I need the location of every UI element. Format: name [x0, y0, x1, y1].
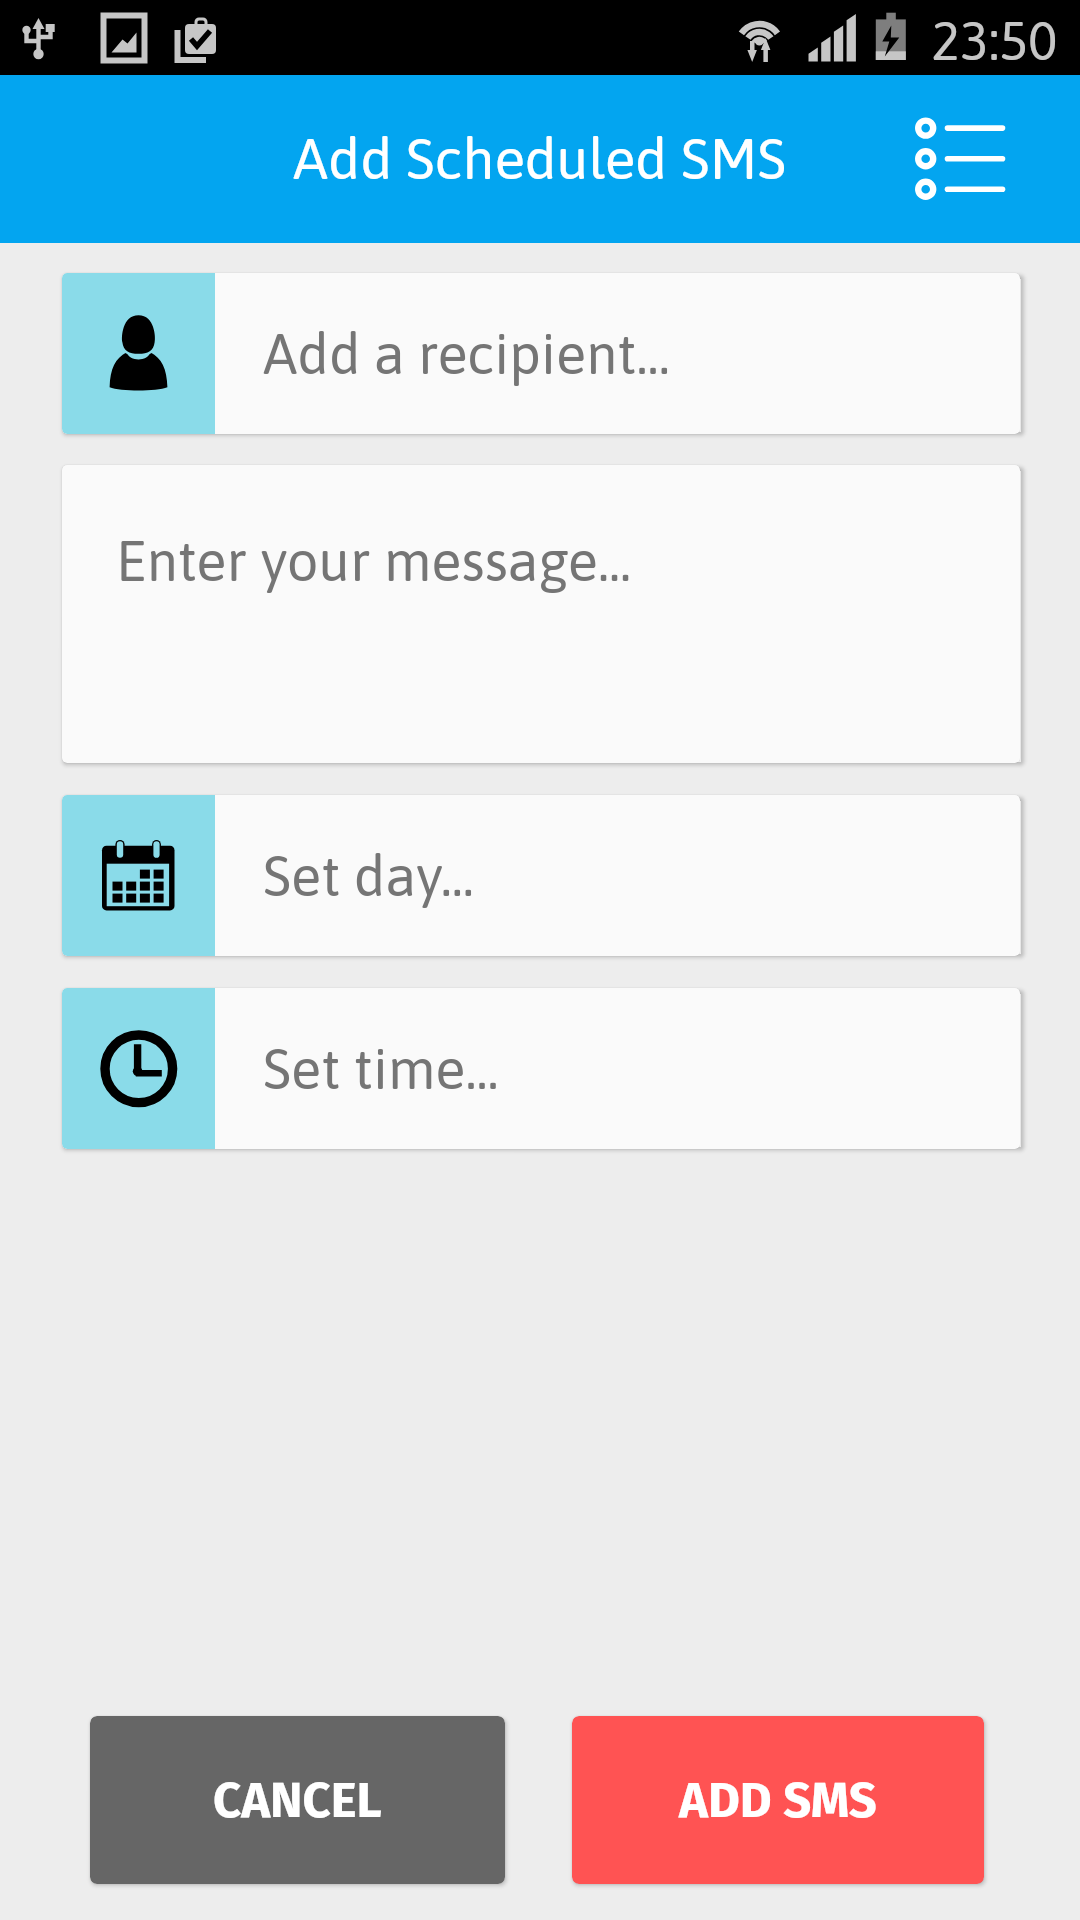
- staticText: CANCEL: [213, 1771, 382, 1830]
- staticText: Set time...: [263, 1037, 499, 1101]
- button[interactable]: CANCEL: [90, 1716, 505, 1884]
- staticText: Add a recipient...: [263, 322, 670, 386]
- button[interactable]: ADD SMS: [572, 1716, 984, 1884]
- staticText: Add Scheduled SMS: [293, 126, 786, 191]
- button[interactable]: Set day...: [62, 795, 1020, 956]
- button[interactable]: Menu: [895, 109, 1025, 219]
- staticText: 23:50: [931, 10, 1058, 72]
- staticText: Enter your message...: [116, 529, 632, 593]
- button[interactable]: Set time...: [62, 988, 1020, 1149]
- button[interactable]: Add a recipient...: [62, 273, 1020, 434]
- button[interactable]: Enter your message...: [62, 465, 1020, 763]
- staticText: ADD SMS: [679, 1771, 877, 1830]
- staticText: Set day...: [263, 844, 474, 908]
